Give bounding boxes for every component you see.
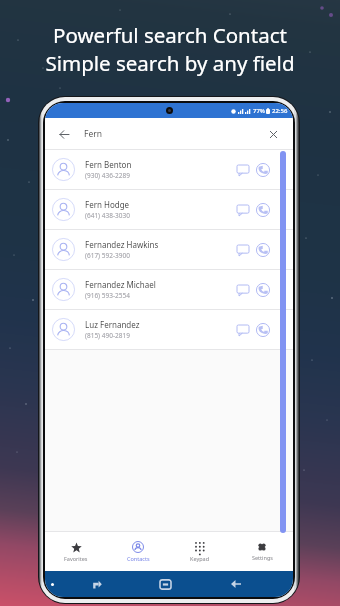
staticText: (815) 490-2819 — [85, 331, 130, 340]
button[interactable]: Message — [234, 161, 252, 179]
button[interactable]: Fernandez Hawkins — [45, 230, 293, 269]
button[interactable]: Favorites — [45, 532, 107, 571]
button[interactable]: Fern Benton — [45, 150, 293, 189]
staticText: Fernandez Hawkins — [85, 239, 159, 250]
staticText: Fern Hodge — [85, 199, 130, 210]
staticText: (641) 438-3030 — [85, 211, 130, 220]
button[interactable]: Fernandez Michael — [45, 270, 293, 309]
button[interactable]: Settings — [231, 532, 293, 571]
staticText: Fernandez Michael — [85, 279, 156, 290]
button[interactable]: Clear search — [265, 126, 281, 142]
staticText: 22:56 — [272, 107, 288, 115]
button[interactable]: Message — [234, 281, 252, 299]
button[interactable]: Call — [254, 241, 272, 259]
button[interactable]: Keypad — [169, 532, 231, 571]
button[interactable]: Message — [234, 241, 252, 259]
staticText: Powerful search Contact — [53, 21, 287, 49]
staticText: (617) 592-3900 — [85, 251, 130, 260]
staticText: Simple search by any field — [45, 49, 295, 77]
staticText: (916) 593-2554 — [85, 291, 130, 300]
button[interactable]: Luz Fernandez — [45, 310, 293, 349]
button[interactable]: Fern Hodge — [45, 190, 293, 229]
button[interactable]: Contacts — [107, 532, 169, 571]
button[interactable]: Back — [56, 126, 72, 142]
button[interactable]: Call — [254, 201, 272, 219]
button[interactable]: Message — [234, 201, 252, 219]
staticText: 77% — [253, 107, 265, 115]
button[interactable]: Back — [226, 574, 246, 594]
button[interactable]: Home — [155, 574, 175, 594]
staticText: (930) 436-2289 — [85, 171, 130, 180]
staticText: Fern — [84, 128, 102, 140]
button[interactable]: Call — [254, 281, 272, 299]
button[interactable]: Call — [254, 321, 272, 339]
staticText: Favorites — [64, 555, 88, 562]
staticText: Keypad — [190, 555, 210, 562]
staticText: Contacts — [127, 555, 150, 562]
staticText: Luz Fernandez — [85, 319, 140, 330]
button[interactable]: Recents — [87, 574, 107, 594]
button[interactable]: Call — [254, 161, 272, 179]
button[interactable]: Message — [234, 321, 252, 339]
staticText: Settings — [252, 554, 273, 561]
staticText: Fern Benton — [85, 159, 132, 170]
